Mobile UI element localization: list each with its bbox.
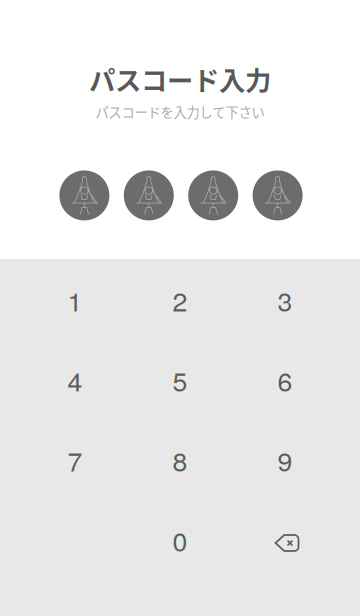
button[interactable]: 7 [22, 420, 127, 500]
staticText: 8 [172, 441, 187, 479]
staticText: 9 [277, 441, 292, 479]
button[interactable]: Delete [232, 500, 337, 580]
staticText: パスコード入力 [89, 60, 271, 98]
staticText: 0 [172, 521, 187, 559]
button[interactable]: 2 [127, 260, 232, 340]
staticText: 7 [67, 441, 82, 479]
button[interactable]: 6 [232, 340, 337, 420]
button[interactable]: 0 [127, 500, 232, 580]
staticText: パスコードを入力して下さい [95, 102, 264, 121]
staticText: 2 [172, 281, 187, 319]
staticText: 6 [277, 361, 292, 399]
staticText: 3 [277, 281, 292, 319]
staticText: 5 [172, 361, 187, 399]
button[interactable]: 1 [22, 260, 127, 340]
button[interactable]: 4 [22, 340, 127, 420]
staticText: 1 [67, 281, 82, 319]
staticText: 4 [67, 361, 82, 399]
button[interactable]: 8 [127, 420, 232, 500]
button[interactable]: 5 [127, 340, 232, 420]
button[interactable]: 9 [232, 420, 337, 500]
button[interactable]: 3 [232, 260, 337, 340]
